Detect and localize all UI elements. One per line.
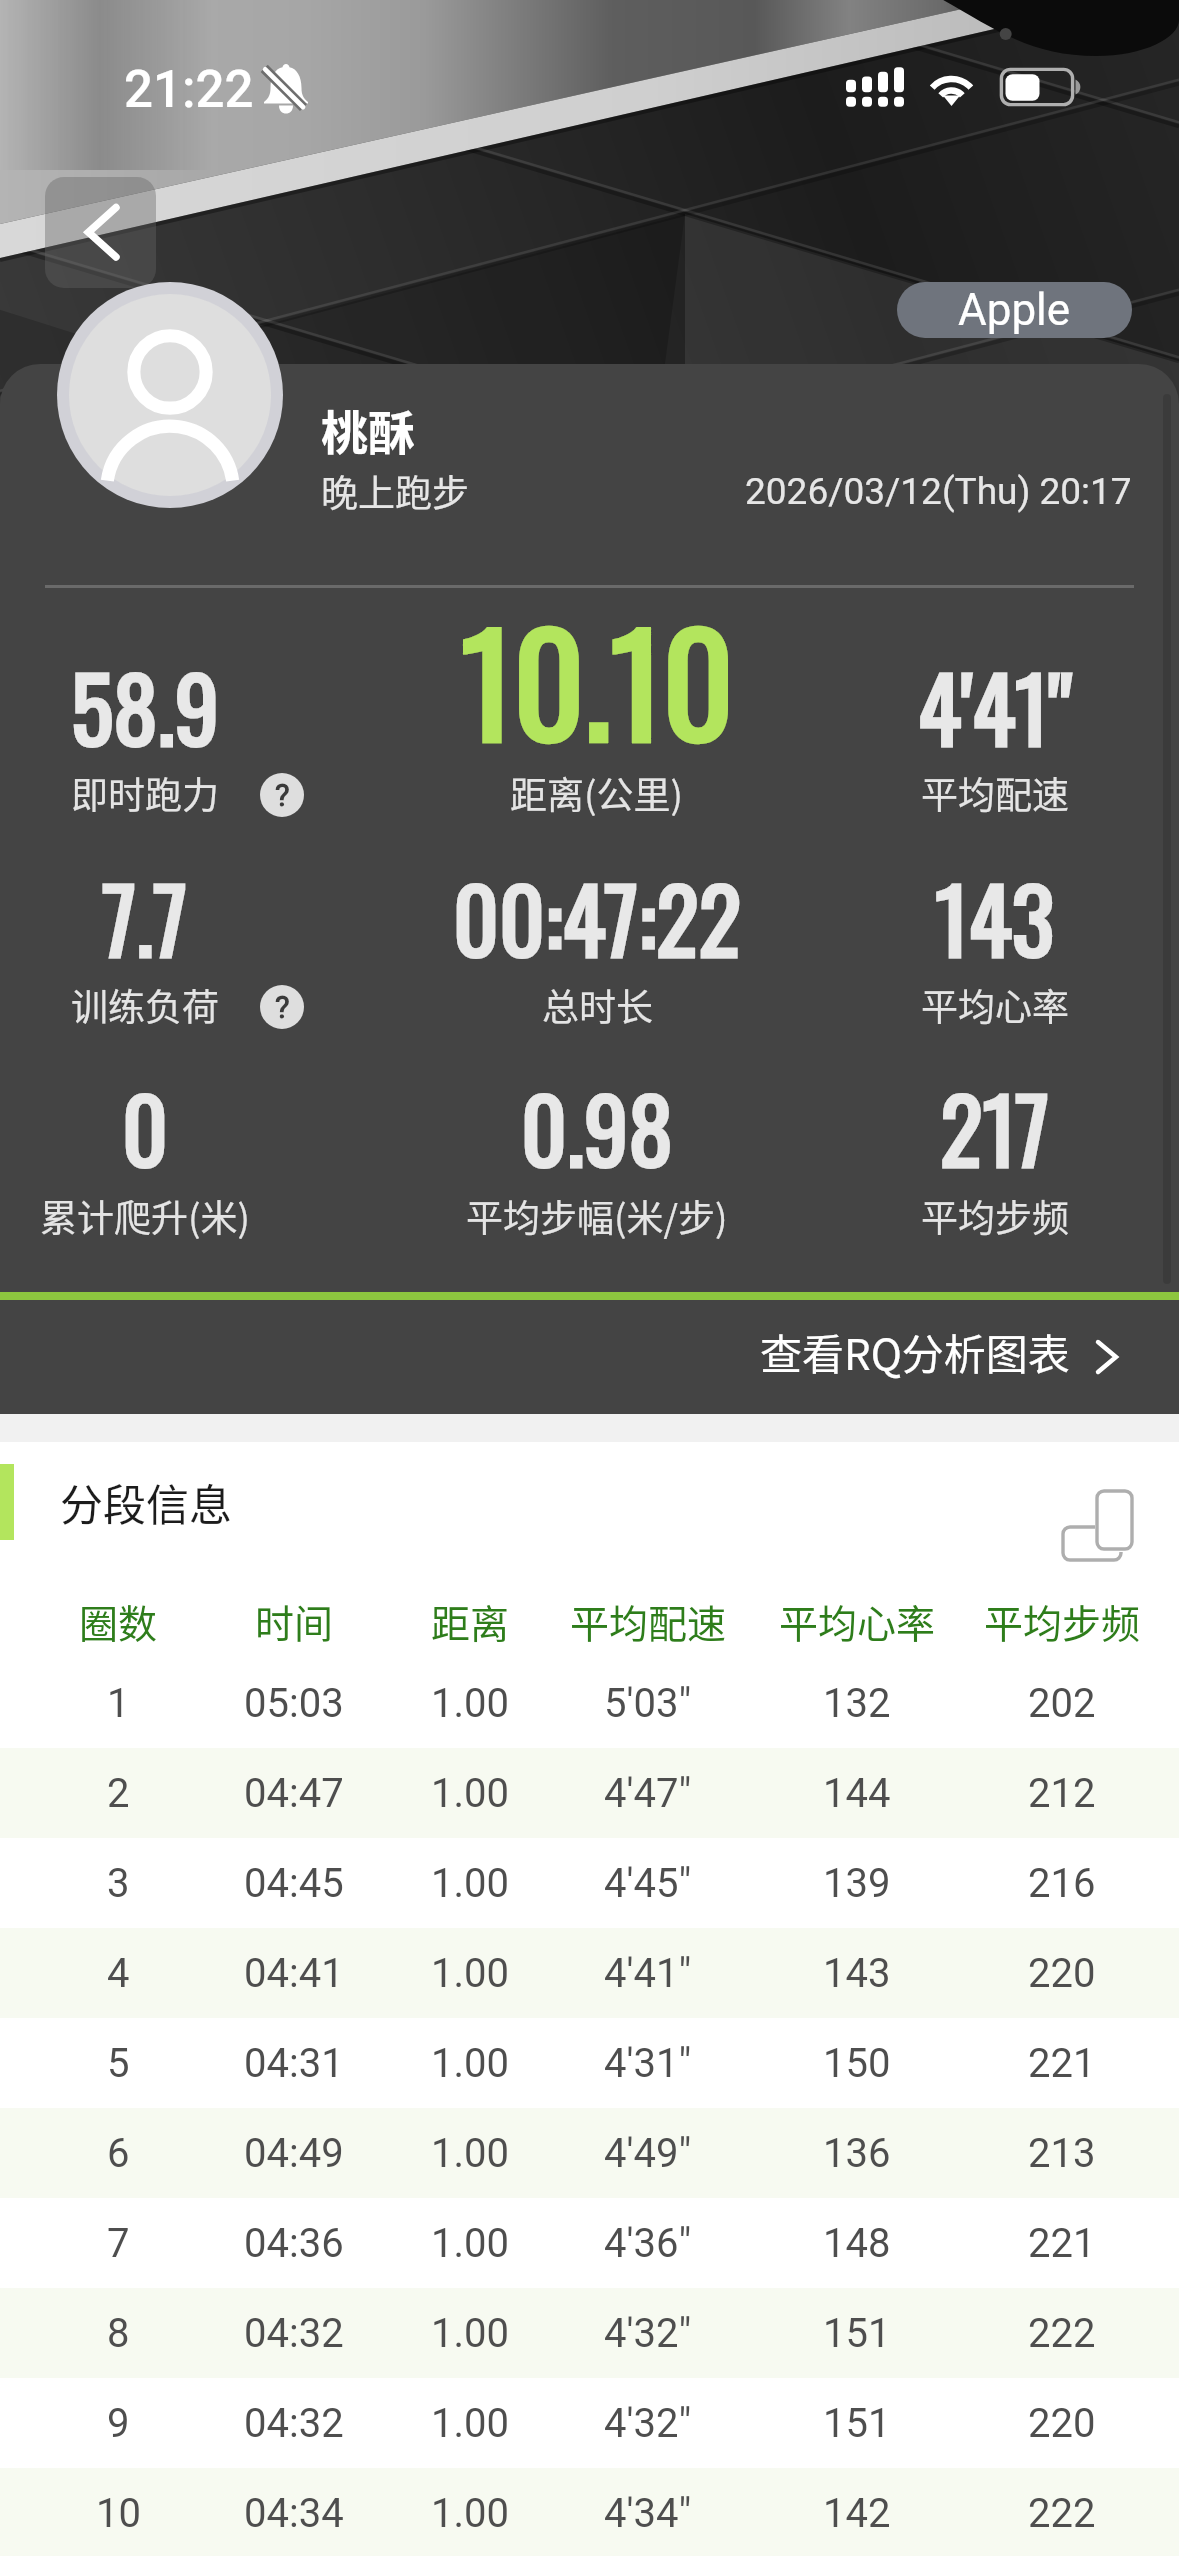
button[interactable]: 7: [0, 2198, 1179, 2288]
staticText: 查看RQ分析图表: [760, 1321, 1070, 1382]
staticText: 222: [1028, 2310, 1096, 2357]
staticText: 10.10: [461, 576, 734, 781]
button[interactable]: [0, 1292, 1179, 1414]
staticText: 晚上跑步: [321, 464, 469, 518]
button[interactable]: 5: [0, 2018, 1179, 2108]
staticText: 平均心率: [779, 1593, 936, 1649]
staticText: 139: [823, 1860, 891, 1907]
staticText: 1.00: [431, 2490, 509, 2537]
staticText: 04:41: [244, 1950, 344, 1997]
button[interactable]: 10: [0, 2468, 1179, 2556]
staticText: ?: [275, 989, 290, 1025]
staticText: 2026/03/12(Thu) 20:17: [745, 470, 1132, 513]
staticText: 总时长: [542, 978, 653, 1032]
staticText: 7.7: [102, 851, 188, 983]
staticText: 136: [823, 2130, 891, 2177]
button[interactable]: More info: [260, 773, 304, 817]
staticText: 4'32": [604, 2400, 692, 2447]
staticText: 7: [107, 2220, 130, 2267]
staticText: 平均配速: [570, 1593, 727, 1649]
button[interactable]: Apple: [897, 282, 1132, 338]
staticText: 216: [1028, 1860, 1096, 1907]
staticText: 距离(公里): [510, 766, 684, 820]
staticText: 圈数: [79, 1593, 158, 1649]
staticText: 0.98: [521, 1061, 673, 1193]
staticText: 00:47:22: [453, 851, 742, 983]
button[interactable]: 1: [0, 1658, 1179, 1748]
staticText: 21:22: [124, 60, 254, 120]
staticText: 217: [940, 1061, 1050, 1193]
staticText: 221: [1028, 2040, 1096, 2087]
staticText: 桃酥: [321, 395, 415, 463]
staticText: 4'32": [604, 2310, 692, 2357]
staticText: 144: [823, 1770, 891, 1817]
staticText: 时间: [255, 1593, 334, 1649]
staticText: 1.00: [431, 2310, 509, 2357]
button[interactable]: 6: [0, 2108, 1179, 2198]
staticText: 4'47": [604, 1770, 692, 1817]
staticText: 04:34: [244, 2490, 344, 2537]
staticText: 04:31: [244, 2040, 344, 2087]
staticText: 220: [1028, 2400, 1096, 2447]
staticText: 143: [935, 851, 1055, 983]
button[interactable]: Switch layout: [1060, 1465, 1136, 1543]
staticText: 04:36: [244, 2220, 344, 2267]
staticText: 0: [122, 1061, 169, 1193]
staticText: 213: [1028, 2130, 1096, 2177]
button[interactable]: Back: [45, 177, 156, 288]
staticText: 142: [823, 2490, 891, 2537]
staticText: ?: [275, 777, 290, 813]
staticText: 1.00: [431, 2040, 509, 2087]
staticText: 212: [1028, 1770, 1096, 1817]
staticText: 平均步频: [984, 1593, 1141, 1649]
staticText: 1.00: [431, 2130, 509, 2177]
staticText: 4'45": [604, 1860, 692, 1907]
staticText: 4'31": [604, 2040, 692, 2087]
staticText: 8: [107, 2310, 130, 2357]
staticText: Apple: [958, 284, 1071, 336]
staticText: 221: [1028, 2220, 1096, 2267]
staticText: 151: [823, 2400, 891, 2447]
staticText: 2: [107, 1770, 130, 1817]
staticText: 1.00: [431, 2220, 509, 2267]
staticText: 即时跑力: [71, 766, 219, 820]
staticText: 4'41": [918, 640, 1072, 772]
staticText: 132: [823, 1680, 891, 1727]
staticText: 143: [823, 1950, 891, 1997]
staticText: 训练负荷: [71, 978, 219, 1032]
staticText: 平均配速: [921, 766, 1069, 820]
staticText: 4'49": [604, 2130, 692, 2177]
staticText: 1.00: [431, 1680, 509, 1727]
staticText: 1.00: [431, 2400, 509, 2447]
staticText: 分段信息: [60, 1471, 232, 1533]
button[interactable]: 4: [0, 1928, 1179, 2018]
staticText: 9: [107, 2400, 130, 2447]
button[interactable]: 2: [0, 1748, 1179, 1838]
staticText: 222: [1028, 2490, 1096, 2537]
staticText: 平均步频: [921, 1189, 1069, 1243]
staticText: 150: [823, 2040, 891, 2087]
staticText: 3: [107, 1860, 130, 1907]
staticText: 累计爬升(米): [40, 1189, 251, 1243]
staticText: 4: [107, 1950, 130, 1997]
staticText: 平均步幅(米/步): [466, 1189, 728, 1243]
staticText: 148: [823, 2220, 891, 2267]
staticText: 202: [1028, 1680, 1096, 1727]
staticText: 6: [107, 2130, 130, 2177]
staticText: 04:32: [244, 2400, 344, 2447]
button[interactable]: 3: [0, 1838, 1179, 1928]
button[interactable]: More info: [260, 985, 304, 1029]
staticText: 4'41": [604, 1950, 692, 1997]
button[interactable]: Profile photo: [57, 282, 283, 508]
button[interactable]: 8: [0, 2288, 1179, 2378]
staticText: 距离: [431, 1593, 510, 1649]
staticText: 58.9: [71, 640, 220, 772]
staticText: 1.00: [431, 1770, 509, 1817]
staticText: 05:03: [244, 1680, 344, 1727]
staticText: 151: [823, 2310, 891, 2357]
staticText: 04:49: [244, 2130, 344, 2177]
staticText: 04:32: [244, 2310, 344, 2357]
staticText: 4'36": [604, 2220, 692, 2267]
staticText: 1: [107, 1680, 130, 1727]
button[interactable]: 9: [0, 2378, 1179, 2468]
